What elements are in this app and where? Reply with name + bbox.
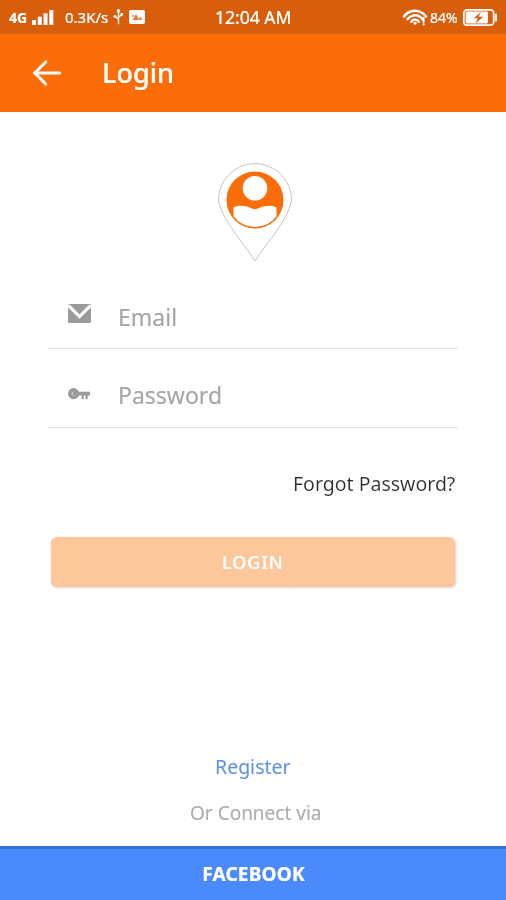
- staticText: 4G: [9, 8, 28, 27]
- staticText: Register: [215, 753, 291, 780]
- staticText: Login: [102, 54, 174, 91]
- button[interactable]: Email: [48, 295, 458, 349]
- button[interactable]: Password: [48, 373, 458, 427]
- button[interactable]: FACEBOOK: [0, 849, 506, 900]
- staticText: FACEBOOK: [202, 861, 305, 887]
- button[interactable]: Register: [209, 749, 297, 784]
- staticText: Forgot Password?: [293, 470, 456, 497]
- staticText: 84%: [430, 8, 458, 27]
- staticText: 12:04 AM: [215, 5, 292, 29]
- staticText: LOGIN: [222, 550, 284, 575]
- button[interactable]: Forgot Password?: [291, 466, 458, 501]
- button[interactable]: Back: [22, 49, 70, 97]
- staticText: Email: [118, 301, 178, 332]
- staticText: 0.3K/s: [65, 7, 109, 27]
- staticText: Password: [118, 379, 223, 410]
- staticText: Or Connect via: [190, 800, 322, 826]
- button[interactable]: LOGIN: [51, 537, 455, 587]
